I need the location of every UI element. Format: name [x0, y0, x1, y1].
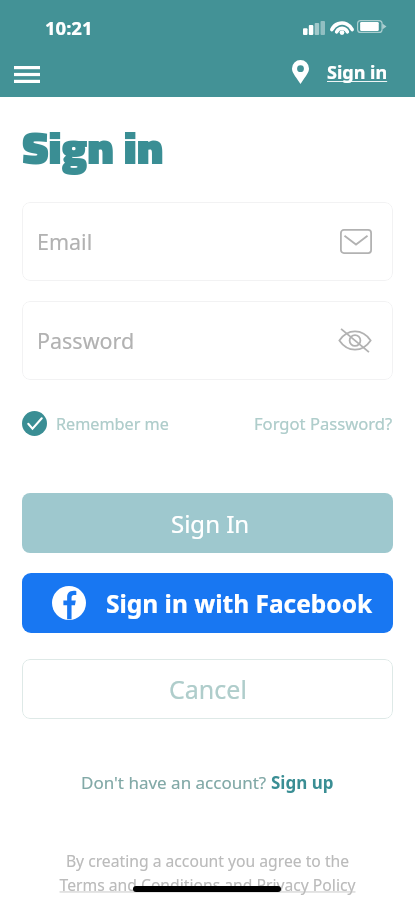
staticText: Sign in	[22, 112, 164, 182]
button[interactable]: Terms and Conditions and Privacy Policy	[0, 874, 415, 895]
staticText: Sign in	[327, 60, 388, 85]
staticText: Don't have an account?	[81, 771, 271, 794]
staticText: Sign up	[271, 771, 334, 794]
button[interactable]: Remember me	[22, 411, 169, 436]
staticText: Password	[37, 326, 135, 355]
staticText: Sign in with Facebook	[106, 587, 373, 620]
button[interactable]: Don't have an account?	[0, 771, 415, 794]
staticText: 10:21	[45, 15, 93, 40]
staticText: Email	[37, 227, 93, 256]
button[interactable]: Forgot Password?	[254, 412, 393, 435]
staticText: Cancel	[169, 672, 247, 706]
button[interactable]: Cancel	[22, 659, 393, 719]
staticText: Remember me	[56, 413, 169, 435]
button[interactable]: Open navigation menu	[7, 54, 47, 94]
button[interactable]: Sign In	[22, 493, 393, 553]
staticText: By creating a account you agree to the	[0, 850, 415, 871]
button[interactable]: Password	[22, 301, 393, 380]
button[interactable]: Email	[22, 202, 393, 281]
button[interactable]: Sign in with Facebook	[22, 573, 393, 633]
button[interactable]: Location	[292, 52, 388, 92]
other: Location	[292, 60, 309, 84]
staticText: Sign In	[171, 507, 250, 540]
